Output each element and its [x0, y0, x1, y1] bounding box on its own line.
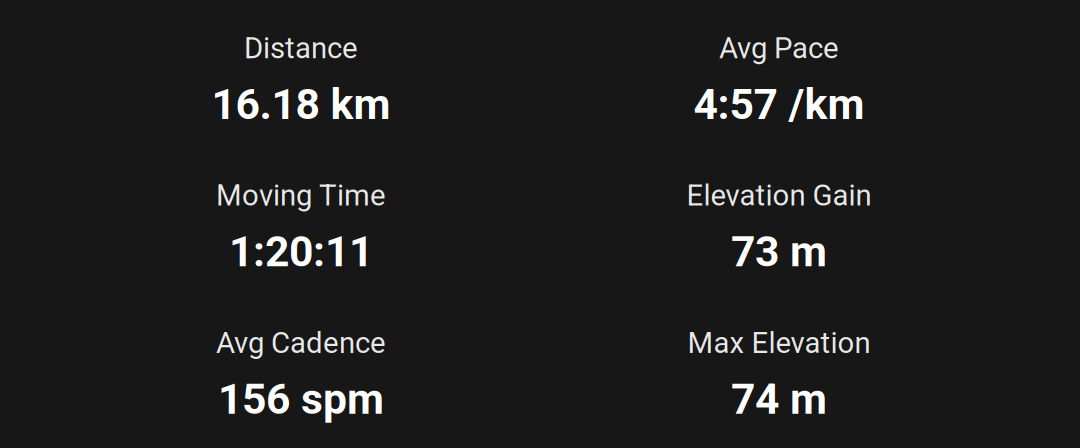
staticText: Avg Cadence	[216, 326, 386, 360]
button[interactable]: Avg Cadence	[62, 326, 540, 424]
staticText: Max Elevation	[687, 326, 870, 360]
staticText: Moving Time	[216, 178, 386, 213]
staticText: 16.18 km	[211, 79, 390, 129]
staticText: 73 m	[731, 227, 827, 277]
button[interactable]: Elevation Gain	[540, 178, 1018, 277]
staticText: Elevation Gain	[686, 178, 871, 213]
staticText: 4:57 /km	[693, 79, 864, 129]
button[interactable]: Distance	[62, 31, 540, 129]
staticText: Distance	[244, 31, 358, 65]
button[interactable]: Max Elevation	[540, 326, 1018, 424]
staticText: 74 m	[731, 374, 827, 424]
button[interactable]: Moving Time	[62, 178, 540, 277]
staticText: 156 spm	[218, 374, 384, 424]
staticText: Avg Pace	[719, 31, 839, 65]
staticText: 1:20:11	[229, 227, 373, 277]
button[interactable]: Avg Pace	[540, 31, 1018, 129]
